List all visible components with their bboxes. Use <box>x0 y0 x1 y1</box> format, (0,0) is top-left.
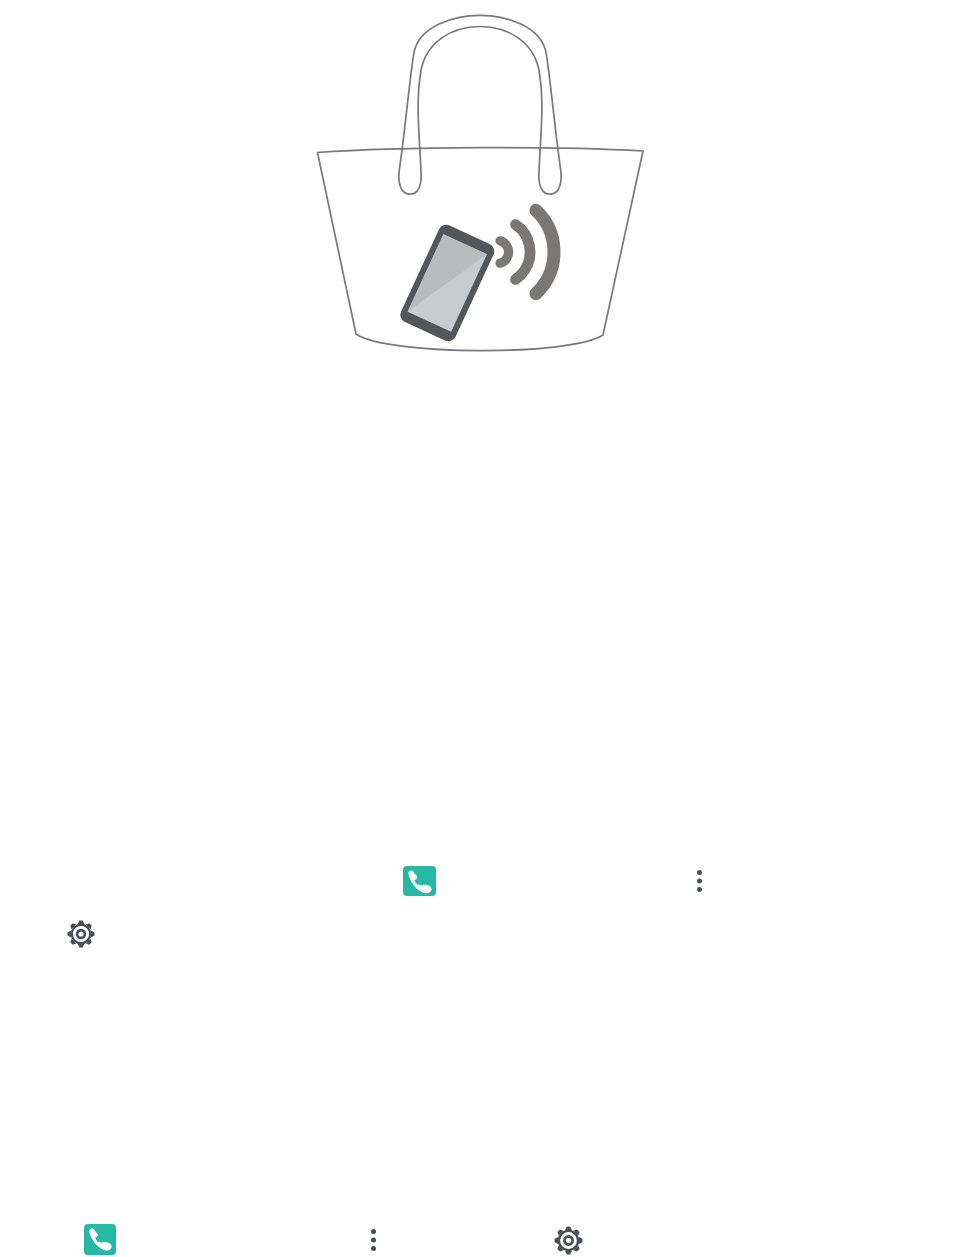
button[interactable]: Settings <box>554 1226 583 1255</box>
button[interactable]: Phone <box>84 1224 116 1255</box>
button[interactable]: More options <box>697 870 702 892</box>
button[interactable]: More options <box>371 1229 376 1251</box>
button[interactable]: Phone <box>403 866 436 896</box>
button[interactable]: Settings <box>67 920 95 948</box>
